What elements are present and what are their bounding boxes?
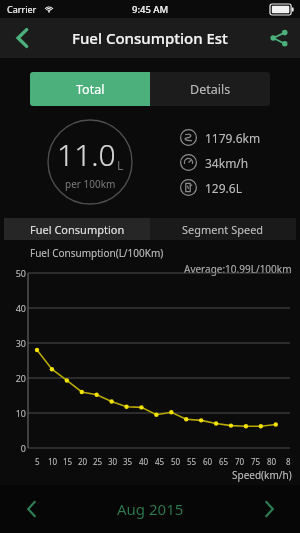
staticText: 0	[20, 442, 26, 454]
staticText: 40	[15, 302, 26, 314]
staticText: 10	[15, 407, 26, 419]
staticText: 30	[108, 456, 118, 467]
staticText: Fuel Consumption Est	[72, 28, 228, 48]
staticText: Carrier	[7, 3, 37, 15]
staticText: Segment Speed	[182, 222, 264, 237]
staticText: 65	[219, 456, 229, 467]
staticText: 55	[187, 456, 197, 467]
staticText: 70	[235, 456, 245, 467]
staticText: 8	[286, 456, 291, 467]
staticText: Average:10.99L/100km	[184, 262, 292, 276]
button[interactable]: Details	[150, 72, 270, 106]
staticText: Speed(km/h)	[232, 468, 292, 482]
staticText: 5	[35, 456, 40, 467]
button[interactable]: Previous month	[0, 485, 62, 533]
staticText: Total	[76, 81, 105, 98]
staticText: 15	[63, 456, 73, 467]
staticText: L	[117, 157, 124, 173]
staticText: 35	[123, 456, 133, 467]
staticText: 50	[15, 267, 26, 279]
button[interactable]: Share	[258, 18, 300, 58]
button[interactable]: Back	[0, 18, 44, 58]
staticText: per 100km	[65, 177, 116, 191]
staticText: 20	[15, 372, 26, 384]
button[interactable]: Total	[30, 72, 150, 106]
staticText: 9:45 AM	[132, 3, 169, 16]
staticText: 80	[267, 456, 277, 467]
button[interactable]: Aug 2015	[117, 499, 184, 519]
staticText: Fuel Consumption(L/100Km)	[30, 246, 164, 260]
staticText: Details	[190, 81, 231, 98]
staticText: 75	[251, 456, 261, 467]
button[interactable]: Segment Speed	[150, 218, 296, 240]
staticText: 60	[203, 456, 213, 467]
staticText: 25	[93, 456, 103, 467]
staticText: 11.0	[57, 134, 116, 175]
staticText: 20	[78, 456, 88, 467]
staticText: 129.6L	[205, 180, 242, 196]
button[interactable]: Next month	[238, 485, 300, 533]
staticText: 50	[171, 456, 181, 467]
button[interactable]: Fuel Consumption	[4, 218, 150, 240]
staticText: 10	[48, 456, 58, 467]
staticText: 40	[139, 456, 149, 467]
staticText: 34km/h	[205, 155, 249, 171]
staticText: Fuel Consumption	[30, 222, 125, 237]
staticText: 45	[155, 456, 165, 467]
staticText: 1179.6km	[205, 130, 261, 146]
staticText: Aug 2015	[117, 499, 184, 519]
staticText: 30	[15, 337, 26, 349]
